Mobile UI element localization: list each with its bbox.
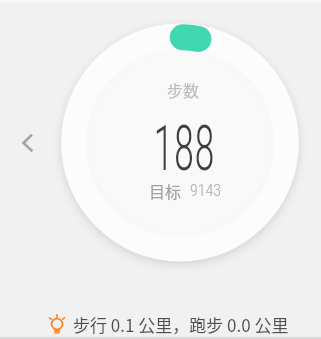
staticText: 9143 — [190, 181, 222, 200]
staticText: 步行 0.1 公里，跑步 0.0 公里 — [73, 312, 289, 336]
staticText: 步数 — [167, 78, 200, 100]
staticText: 目标 — [149, 179, 182, 201]
button[interactable]: 步行 0.1 公里，跑步 0.0 公里 — [46, 312, 289, 336]
staticText: 188 — [153, 112, 215, 174]
button[interactable] — [6, 126, 40, 160]
